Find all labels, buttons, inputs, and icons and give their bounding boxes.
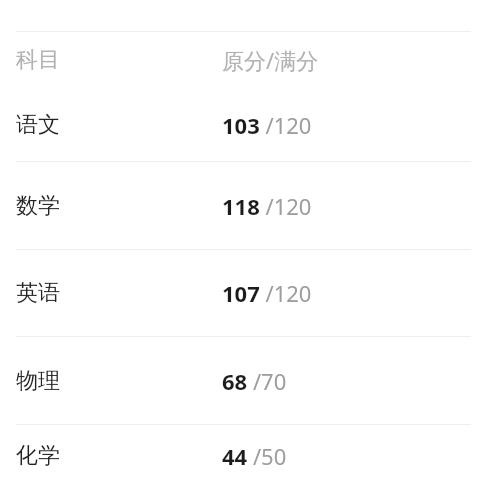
staticText: 物理 bbox=[16, 367, 60, 395]
staticText: 数学 bbox=[16, 192, 60, 220]
staticText: 化学 bbox=[16, 442, 60, 470]
button[interactable]: 语文 bbox=[0, 88, 487, 161]
button[interactable]: 英语 bbox=[0, 250, 487, 336]
staticText: 103 /120 bbox=[222, 110, 312, 140]
staticText: 107 /120 bbox=[222, 278, 312, 308]
button[interactable]: 物理 bbox=[0, 337, 487, 424]
staticText: 118 /120 bbox=[222, 191, 312, 221]
button[interactable]: 数学 bbox=[0, 162, 487, 249]
staticText: 68 /70 bbox=[222, 366, 287, 396]
staticText: 英语 bbox=[16, 279, 60, 307]
staticText: 44 /50 bbox=[222, 441, 287, 471]
staticText: 语文 bbox=[16, 111, 60, 139]
staticText: 科目 bbox=[16, 46, 60, 74]
button[interactable]: 化学 bbox=[0, 425, 487, 487]
staticText: 原分/满分 bbox=[222, 45, 319, 75]
